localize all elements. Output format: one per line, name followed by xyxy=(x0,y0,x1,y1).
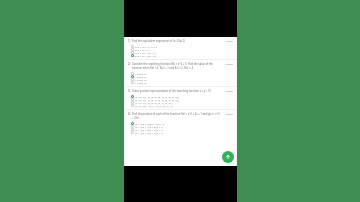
staticText: (x, y) = {(1, 9), (2, 8), (3, 7), (4, 6)… xyxy=(135,101,172,104)
staticText: Find the product of each of the function… xyxy=(132,112,220,116)
staticText: (x + 1)(x + 1)(x + 1)(x + 1) xyxy=(135,131,163,134)
staticText: (x + 1)(x + 2)(x + 1)(x + 1) xyxy=(135,128,163,131)
staticText: (x + 1)(x + 1)(x + 2)(x + 1) xyxy=(135,125,163,128)
button[interactable]: 19 and 11 xyxy=(131,75,233,78)
staticText: x^2 + 2x + 2 xyxy=(135,48,149,51)
button[interactable]: x^2 + 3x + 2 + x + 2 xyxy=(131,45,233,48)
staticText: 1 point xyxy=(225,112,233,115)
staticText: 2) xyxy=(128,62,131,66)
staticText: 1 point xyxy=(225,39,233,42)
button[interactable]: 11 and 19 xyxy=(131,81,233,84)
staticText: 11 and 19 xyxy=(135,81,147,84)
staticText: + 2(x) xyxy=(132,116,139,120)
staticText: Select product representation of the mat… xyxy=(132,89,211,93)
staticText: 3) xyxy=(128,89,131,93)
button[interactable]: (x + 1)(x + 2)(x + 1)(x + 1) xyxy=(131,128,233,131)
staticText: 12 and 19 xyxy=(135,78,147,81)
staticText: Consider the matching function f(x) = x^… xyxy=(132,62,213,66)
button[interactable]: x^2 + 2x + 2 xyxy=(131,48,233,51)
button[interactable]: (x + 1)(x + 1)(x + 1)(x + 1) xyxy=(131,131,233,134)
button[interactable]: x^2 + 3x + 2(x + 2) xyxy=(131,54,233,57)
button[interactable]: 12 and 19 xyxy=(131,78,233,81)
staticText: (x, y) = {(0, 10), (1, 9), (2, 8), (3, 7… xyxy=(135,104,174,107)
button[interactable]: (x, y) = {(0, 10), (1, 9), (2, 8), (3, 7… xyxy=(131,104,233,107)
button[interactable]: Submit xyxy=(222,151,234,163)
staticText: 1) xyxy=(128,39,131,43)
button[interactable]: 19 and 12 xyxy=(131,72,233,75)
staticText: x^2 + 3x + 2(x + 2) xyxy=(135,54,156,57)
staticText: 19 and 11 xyxy=(135,75,147,78)
button[interactable]: (x, y) = {(1, 1), (2, 2), (3, 3), (4, 4)… xyxy=(131,98,233,101)
staticText: 19 and 12 xyxy=(135,72,147,75)
button[interactable]: (x + 1)(x + 1)(x + 2)(x + 1) xyxy=(131,125,233,128)
staticText: (x + 1)(x + 1)(2x + 1)(x + 1) xyxy=(135,122,165,125)
staticText: 1 point xyxy=(225,89,233,92)
button[interactable]: (x, y) = {(1, 9), (2, 8), (3, 7), (4, 6)… xyxy=(131,95,233,98)
staticText: Find the equivalent expression of (x+1)(… xyxy=(132,39,185,43)
staticText: 1 point xyxy=(225,62,233,65)
staticText: x^2 + 3x + 2 + x + 2 xyxy=(135,45,158,48)
staticText: x^2 + 3x + 2(x + 1) xyxy=(135,51,156,54)
button[interactable]: x^2 + 3x + 2(x + 1) xyxy=(131,51,233,54)
staticText: 4) xyxy=(128,112,131,116)
button[interactable]: (x + 1)(x + 1)(2x + 1)(x + 1) xyxy=(131,122,233,125)
staticText: function when f(x) = 4, f(x) = -1 and f(… xyxy=(132,66,194,70)
staticText: (x, y) = {(1, 1), (2, 2), (3, 3), (4, 4)… xyxy=(135,98,179,101)
button[interactable]: (x, y) = {(1, 9), (2, 8), (3, 7), (4, 6)… xyxy=(131,101,233,104)
staticText: (x, y) = {(1, 9), (2, 8), (3, 7), (4, 6)… xyxy=(135,95,179,98)
